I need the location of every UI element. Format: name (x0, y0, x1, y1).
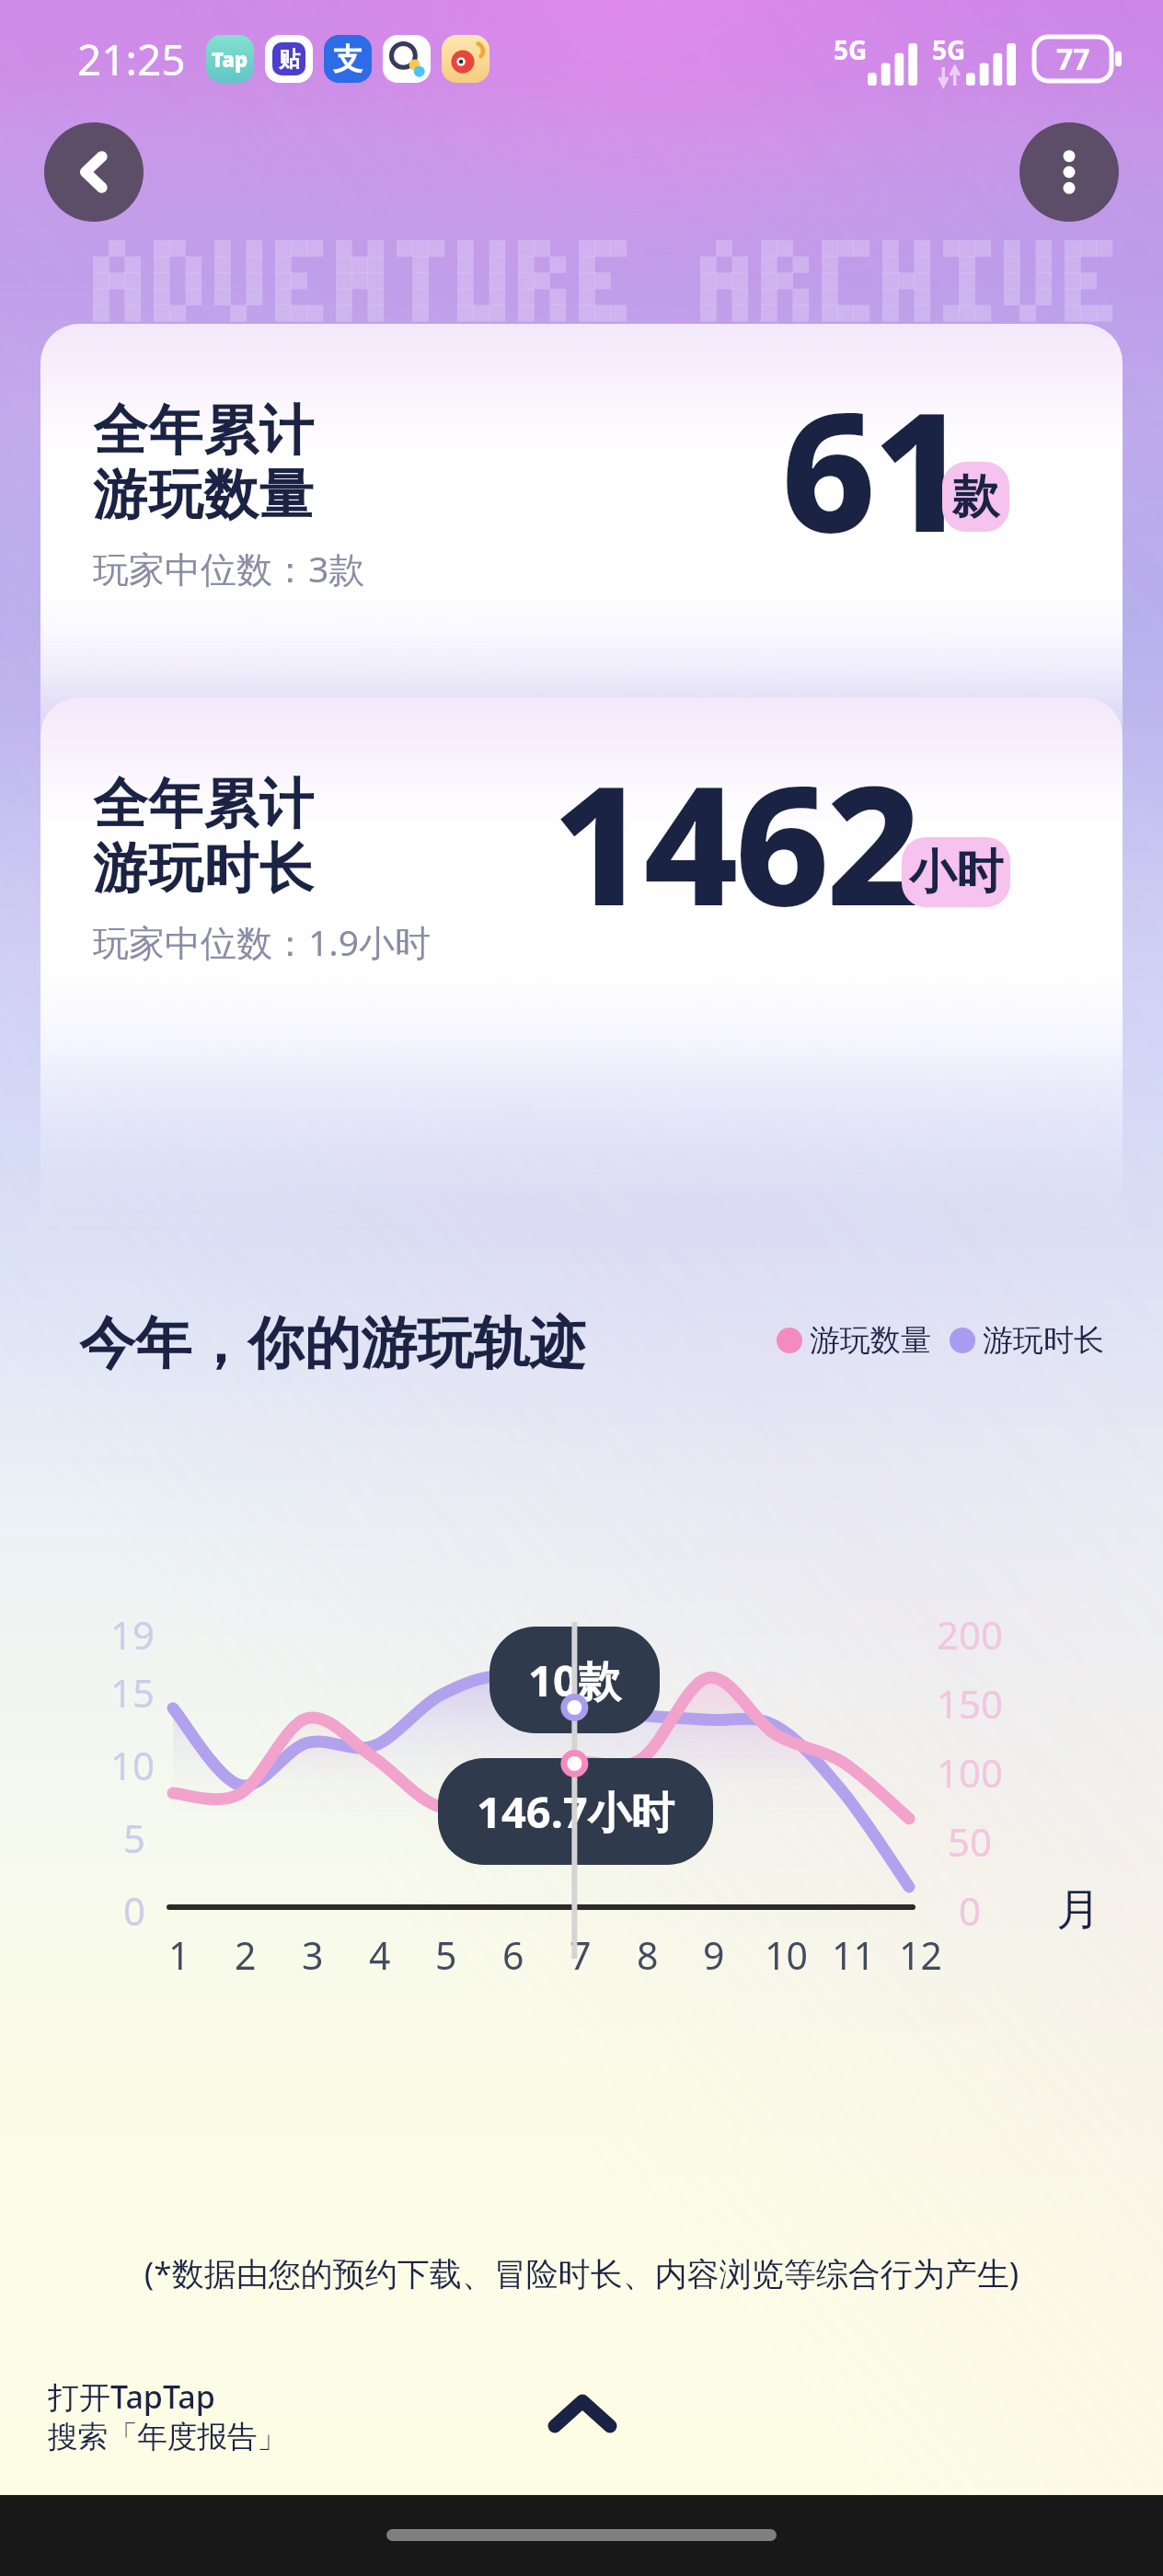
staticText: 玩家中位数：3款 (93, 544, 365, 592)
staticText: 游玩数量 (810, 1321, 931, 1360)
staticText: 9 (703, 1929, 725, 1981)
staticText: 19 (110, 1608, 155, 1661)
staticText: 200 (937, 1608, 1004, 1661)
staticText: 小时 (909, 843, 1003, 902)
button[interactable]: More options (1019, 122, 1119, 222)
staticText: 50 (948, 1815, 993, 1868)
staticText: 5 (435, 1929, 457, 1981)
staticText: Tap (212, 45, 248, 73)
staticText: 打开TapTap (48, 2375, 215, 2418)
staticText: 款 (952, 467, 999, 526)
staticText: 150 (937, 1677, 1004, 1730)
staticText: 2 (235, 1929, 257, 1981)
button[interactable]: Back (44, 122, 144, 222)
staticText: 8 (637, 1929, 659, 1981)
staticText: 全年累计 (93, 770, 315, 838)
button[interactable] (40, 697, 1123, 918)
staticText: 10 (765, 1929, 808, 1981)
staticText: 4 (369, 1929, 391, 1981)
staticText: 游玩时长 (983, 1321, 1104, 1360)
staticText: 月 (1056, 1882, 1100, 1938)
staticText: 10 (110, 1739, 155, 1791)
staticText: 15 (110, 1666, 155, 1719)
staticText: 玩家中位数：1.9小时 (93, 917, 432, 966)
staticText: 12 (899, 1929, 942, 1981)
staticText: 21:25 (77, 30, 186, 88)
staticText: 全年累计 (93, 397, 315, 465)
staticText: 7 (570, 1929, 592, 1981)
staticText: 1462 (552, 730, 918, 953)
staticText: 11 (832, 1929, 875, 1981)
staticText: 5G (932, 32, 966, 67)
staticText: 146.7小时 (477, 1782, 674, 1841)
button[interactable] (40, 324, 1123, 545)
staticText: 5G (834, 32, 868, 67)
staticText: 今年，你的游玩轨迹 (79, 1308, 586, 1379)
staticText: 搜索「年度报告」 (48, 2418, 287, 2456)
staticText: 贴 (279, 46, 300, 73)
staticText: 77 (1056, 39, 1090, 79)
staticText: 游玩数量 (93, 461, 315, 529)
staticText: (*数据由您的预约下载、冒险时长、内容浏览等综合行为产生) (0, 2251, 1163, 2295)
staticText: 100 (937, 1746, 1004, 1799)
staticText: 游玩时长 (93, 834, 315, 903)
staticText: 5 (123, 1811, 146, 1864)
staticText: 1 (168, 1929, 190, 1981)
staticText: 10款 (528, 1650, 621, 1709)
staticText: 6 (502, 1929, 524, 1981)
button[interactable]: Expand (550, 2396, 615, 2431)
staticText: 61 (781, 357, 964, 580)
staticText: 0 (123, 1884, 146, 1937)
staticText: 3 (302, 1929, 324, 1981)
staticText: 0 (959, 1884, 982, 1937)
staticText: 支 (333, 40, 363, 77)
